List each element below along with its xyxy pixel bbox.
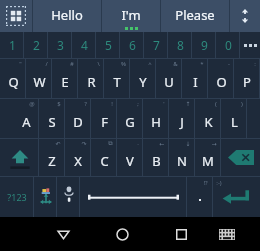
- button[interactable]: #: [52, 59, 78, 98]
- button[interactable]: 7: [144, 32, 168, 58]
- staticText: V: [126, 152, 134, 170]
- button[interactable]: Shift: [0, 139, 39, 176]
- button[interactable]: 9: [192, 32, 216, 58]
- button[interactable]: Clipboard: [0, 0, 32, 32]
- button[interactable]: ↶: [39, 139, 65, 176]
- button[interactable]: ': [143, 99, 169, 138]
- staticText: ←: [159, 140, 165, 147]
- staticText: ↶: [55, 140, 61, 147]
- staticText: $: [57, 100, 61, 108]
- button[interactable]: Expand suggestions: [230, 0, 260, 32]
- button[interactable]: (: [195, 99, 221, 138]
- button[interactable]: /: [26, 59, 52, 98]
- button[interactable]: \: [78, 59, 104, 98]
- staticText: Y: [139, 73, 147, 91]
- button[interactable]: ·: [117, 139, 143, 176]
- button[interactable]: Home: [103, 217, 142, 251]
- staticText: ": [19, 60, 22, 68]
- button[interactable]: %: [104, 59, 130, 98]
- staticText: D: [73, 113, 83, 131]
- button[interactable]: &: [156, 59, 182, 98]
- button[interactable]: !?: [187, 177, 213, 217]
- staticText: X: [74, 152, 82, 170]
- staticText: I'm: [121, 6, 141, 24]
- button[interactable]: ?123: [0, 177, 34, 217]
- button[interactable]: Backspace: [221, 139, 260, 176]
- staticText: 5: [105, 37, 112, 53]
- staticText: B: [152, 152, 161, 170]
- staticText: ?123: [7, 191, 27, 203]
- button[interactable]: Voice input: [57, 177, 80, 217]
- staticText: F: [101, 113, 108, 131]
- staticText: 8: [177, 37, 184, 53]
- staticText: C: [100, 152, 109, 170]
- button[interactable]: 1: [0, 32, 24, 58]
- button[interactable]: ←: [143, 139, 169, 176]
- button[interactable]: ": [0, 59, 26, 98]
- button[interactable]: 8: [168, 32, 192, 58]
- button[interactable]: ↷: [65, 139, 91, 176]
- staticText: ↑: [185, 100, 191, 107]
- button[interactable]: @: [13, 99, 39, 138]
- button[interactable]: *: [182, 59, 208, 98]
- button[interactable]: [80, 177, 187, 217]
- staticText: 7: [153, 37, 160, 53]
- staticText: &: [173, 60, 178, 68]
- button[interactable]: :: [234, 59, 260, 98]
- staticText: N: [177, 152, 187, 170]
- staticText: ;: [137, 100, 139, 108]
- button[interactable]: Please: [161, 0, 229, 32]
- staticText: /: [45, 60, 48, 68]
- staticText: A: [22, 113, 31, 131]
- button[interactable]: Back: [44, 217, 83, 251]
- staticText: ?: [84, 100, 87, 108]
- button[interactable]: !: [91, 99, 117, 138]
- button[interactable]: ?: [65, 99, 91, 138]
- button[interactable]: Switch keyboard: [207, 217, 246, 251]
- button[interactable]: I'm: [102, 0, 160, 32]
- staticText: 3: [57, 37, 64, 53]
- staticText: 1: [9, 37, 16, 53]
- button[interactable]: ↑: [169, 99, 195, 138]
- staticText: P: [243, 73, 251, 91]
- button[interactable]: $: [39, 99, 65, 138]
- staticText: K: [204, 113, 213, 131]
- button[interactable]: More: [240, 32, 260, 58]
- button[interactable]: ⧉: [91, 139, 117, 176]
- button[interactable]: ↓: [169, 139, 195, 176]
- button[interactable]: Change keyboard: [34, 177, 57, 217]
- staticText: I: [193, 73, 198, 91]
- button[interactable]: Recent apps: [162, 217, 201, 251]
- staticText: S: [48, 113, 56, 131]
- staticText: O: [216, 73, 227, 91]
- staticText: 4: [81, 37, 88, 53]
- staticText: (: [215, 100, 217, 108]
- button[interactable]: 0: [216, 32, 240, 58]
- button[interactable]: 2: [24, 32, 48, 58]
- button[interactable]: ^: [130, 59, 156, 98]
- staticText: →: [211, 140, 217, 147]
- button[interactable]: 4: [72, 32, 96, 58]
- staticText: Please: [175, 6, 215, 24]
- staticText: 2: [33, 37, 40, 53]
- button[interactable]: Hello: [33, 0, 101, 32]
- button[interactable]: 5: [96, 32, 120, 58]
- button[interactable]: ): [221, 99, 247, 138]
- staticText: ): [241, 100, 243, 108]
- button[interactable]: →: [195, 139, 221, 176]
- staticText: R: [87, 73, 96, 91]
- staticText: Hello: [51, 6, 83, 24]
- button[interactable]: 3: [48, 32, 72, 58]
- staticText: 6: [129, 37, 136, 53]
- staticText: :: [254, 60, 256, 68]
- button[interactable]: ;: [117, 99, 143, 138]
- staticText: Z: [48, 152, 56, 170]
- staticText: !?: [203, 179, 208, 187]
- staticText: ·: [137, 140, 139, 148]
- staticText: ': [163, 100, 165, 108]
- button[interactable]: Enter: [213, 177, 260, 217]
- button[interactable]: -: [208, 59, 234, 98]
- button[interactable]: 6: [120, 32, 144, 58]
- staticText: :-): [216, 179, 222, 187]
- staticText: \: [97, 60, 100, 68]
